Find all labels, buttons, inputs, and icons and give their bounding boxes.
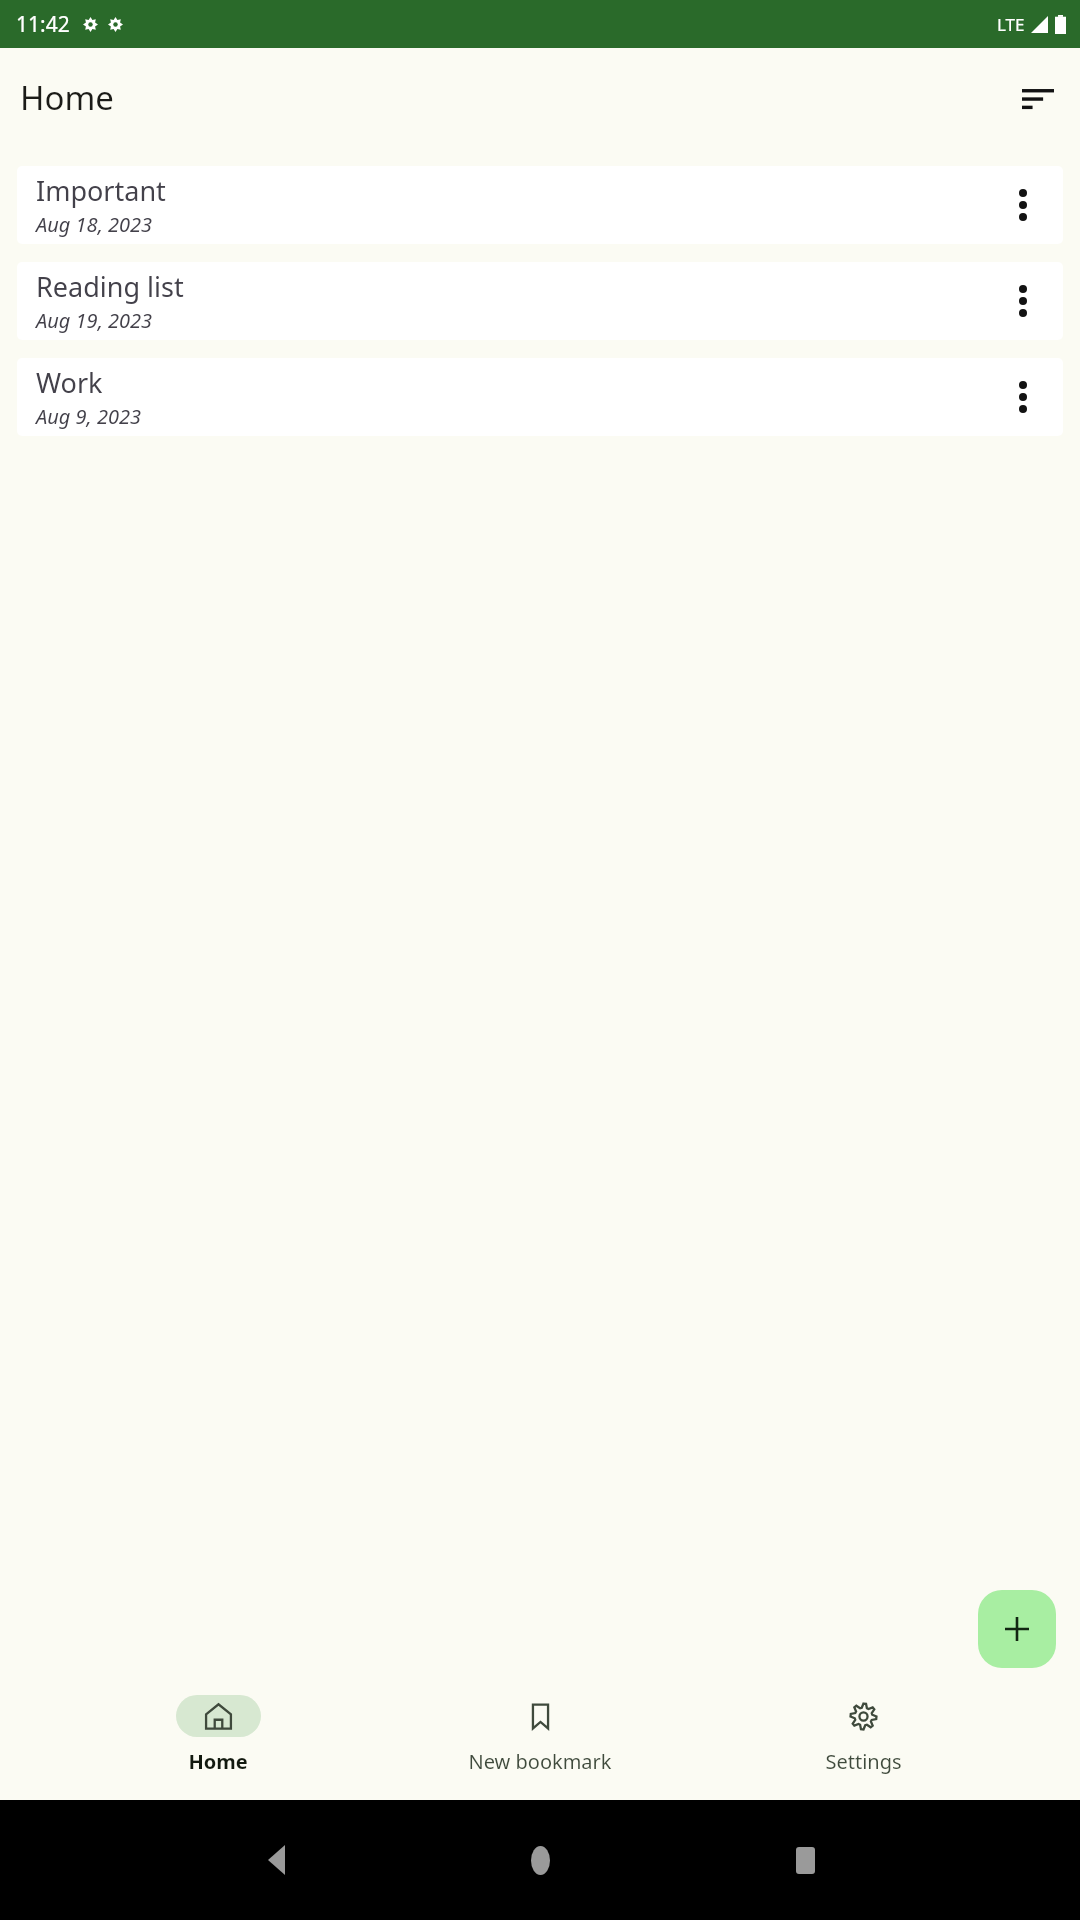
button[interactable]: Recent apps	[776, 1831, 834, 1889]
button[interactable]: Settings	[758, 1690, 968, 1775]
staticText: Important	[36, 172, 166, 209]
button[interactable]: Back	[247, 1831, 305, 1889]
staticText: Settings	[825, 1748, 902, 1775]
staticText: New bookmark	[468, 1748, 612, 1775]
button[interactable]: More options	[1005, 273, 1041, 329]
staticText: Aug 19, 2023	[36, 307, 153, 334]
button[interactable]: Reading list	[17, 262, 1063, 340]
staticText: Home	[20, 75, 114, 120]
button[interactable]: Important	[17, 166, 1063, 244]
button[interactable]: Home	[113, 1690, 323, 1775]
button[interactable]: Work	[17, 358, 1063, 436]
staticText: Aug 18, 2023	[36, 211, 153, 238]
staticText: LTE	[997, 13, 1025, 36]
staticText: Work	[36, 364, 103, 401]
button[interactable]: Sort	[1010, 70, 1066, 126]
button[interactable]: More options	[1005, 177, 1041, 233]
button[interactable]: Home	[511, 1831, 569, 1889]
button[interactable]: More options	[1005, 369, 1041, 425]
staticText: Aug 9, 2023	[36, 403, 142, 430]
button[interactable]: Add bookmark	[978, 1590, 1056, 1668]
staticText: 11:42	[16, 10, 70, 39]
staticText: Home	[188, 1748, 248, 1775]
button[interactable]: New bookmark	[435, 1690, 645, 1775]
staticText: Reading list	[36, 268, 184, 305]
